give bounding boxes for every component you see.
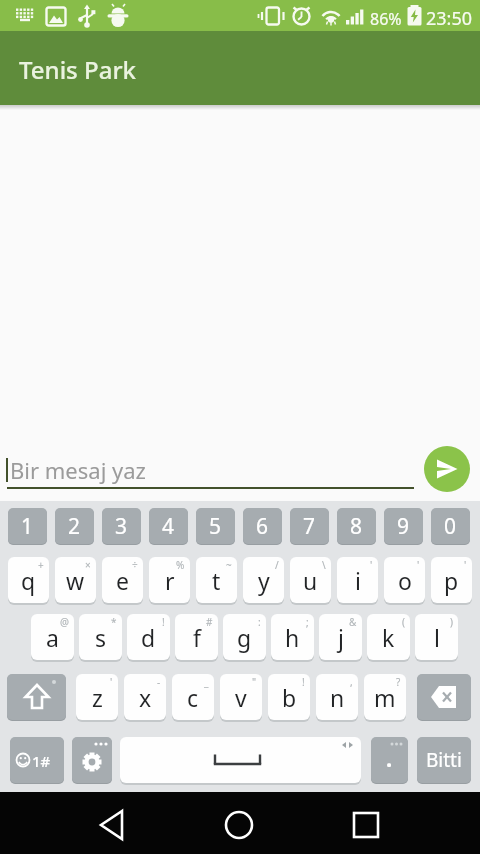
button[interactable]: j bbox=[319, 614, 362, 660]
staticText: 4 bbox=[162, 512, 175, 541]
staticText: \ bbox=[322, 558, 326, 572]
staticText: " bbox=[252, 675, 257, 689]
staticText: 5 bbox=[209, 512, 222, 541]
button[interactable]: t bbox=[196, 557, 237, 603]
staticText: ' bbox=[417, 558, 420, 572]
button[interactable]: 5 bbox=[196, 508, 235, 544]
staticText: ; bbox=[306, 615, 309, 629]
button[interactable]: g bbox=[223, 614, 266, 660]
button[interactable]: 2 bbox=[55, 508, 94, 544]
staticText: 23:50 bbox=[426, 6, 473, 31]
staticText: _ bbox=[204, 675, 209, 689]
staticText: ) bbox=[450, 615, 453, 629]
button[interactable]: b bbox=[268, 674, 310, 720]
staticText: 8 bbox=[350, 512, 363, 541]
button[interactable] bbox=[4, 446, 416, 492]
button[interactable]: 9 bbox=[384, 508, 423, 544]
button[interactable]: m bbox=[364, 674, 406, 720]
button[interactable]: l bbox=[415, 614, 458, 660]
staticText: Bitti bbox=[426, 747, 462, 773]
button[interactable]: a bbox=[31, 614, 74, 660]
staticText: 3 bbox=[115, 512, 128, 541]
staticText: d bbox=[141, 622, 156, 653]
staticText: - bbox=[157, 675, 161, 689]
staticText: ? bbox=[396, 675, 401, 689]
button[interactable]: 1# bbox=[10, 737, 64, 783]
button[interactable]: 0 bbox=[431, 508, 470, 544]
button[interactable] bbox=[85, 802, 141, 848]
staticText: # bbox=[206, 615, 213, 629]
button[interactable]: q bbox=[8, 557, 49, 603]
button[interactable]: . bbox=[371, 737, 408, 783]
button[interactable]: 4 bbox=[149, 508, 188, 544]
staticText: g bbox=[237, 622, 252, 653]
button[interactable]: e bbox=[102, 557, 143, 603]
staticText: k bbox=[382, 622, 395, 653]
staticText: 9 bbox=[397, 512, 410, 541]
staticText: b bbox=[282, 682, 297, 713]
button[interactable]: 8 bbox=[337, 508, 376, 544]
staticText: r bbox=[165, 565, 175, 596]
button[interactable] bbox=[338, 802, 394, 848]
staticText: y bbox=[258, 565, 270, 596]
staticText: v bbox=[235, 682, 247, 713]
button[interactable] bbox=[211, 802, 267, 848]
button[interactable] bbox=[424, 446, 470, 492]
button[interactable]: f bbox=[175, 614, 218, 660]
button[interactable]: s bbox=[79, 614, 122, 660]
staticText: 0 bbox=[444, 512, 457, 541]
button[interactable]: d bbox=[127, 614, 170, 660]
button[interactable]: Bitti bbox=[417, 737, 471, 783]
button[interactable]: c bbox=[172, 674, 214, 720]
staticText: ÷ bbox=[132, 558, 138, 572]
staticText: ~ bbox=[226, 558, 232, 572]
staticText: q bbox=[21, 565, 36, 596]
button[interactable]: 6 bbox=[243, 508, 282, 544]
staticText: 7 bbox=[303, 512, 316, 541]
button[interactable]: h bbox=[271, 614, 314, 660]
button[interactable]: u bbox=[290, 557, 331, 603]
staticText: e bbox=[116, 565, 129, 596]
staticText: x bbox=[139, 682, 152, 713]
button[interactable]: o bbox=[384, 557, 425, 603]
staticText: % bbox=[176, 558, 185, 572]
button[interactable] bbox=[7, 674, 66, 720]
staticText: 1# bbox=[32, 751, 51, 771]
button[interactable] bbox=[120, 737, 361, 783]
button[interactable]: k bbox=[367, 614, 410, 660]
button[interactable]: w bbox=[55, 557, 96, 603]
button[interactable] bbox=[72, 737, 112, 783]
button[interactable]: y bbox=[243, 557, 284, 603]
button[interactable]: n bbox=[316, 674, 358, 720]
button[interactable]: x bbox=[124, 674, 166, 720]
button[interactable]: 3 bbox=[102, 508, 141, 544]
staticText: u bbox=[303, 565, 318, 596]
staticText: z bbox=[92, 682, 103, 713]
staticText: p bbox=[444, 565, 459, 596]
staticText: Bir mesaj yaz bbox=[10, 455, 146, 485]
button[interactable]: v bbox=[220, 674, 262, 720]
button[interactable] bbox=[417, 674, 471, 720]
staticText: + bbox=[38, 558, 44, 572]
button[interactable]: r bbox=[149, 557, 190, 603]
staticText: i bbox=[355, 565, 361, 596]
staticText: 1 bbox=[21, 512, 34, 541]
staticText: × bbox=[85, 558, 91, 572]
staticText: m bbox=[374, 682, 396, 713]
button[interactable]: z bbox=[76, 674, 118, 720]
staticText: n bbox=[330, 682, 345, 713]
staticText: w bbox=[66, 565, 85, 596]
staticText: ! bbox=[302, 675, 305, 689]
staticText: Tenis Park bbox=[19, 53, 136, 86]
button[interactable]: 7 bbox=[290, 508, 329, 544]
button[interactable]: 1 bbox=[8, 508, 47, 544]
staticText: ! bbox=[162, 615, 165, 629]
staticText: * bbox=[111, 615, 117, 629]
staticText: ' bbox=[110, 675, 113, 689]
staticText: , bbox=[350, 675, 353, 689]
staticText: & bbox=[349, 615, 357, 629]
button[interactable]: i bbox=[337, 557, 378, 603]
staticText: j bbox=[338, 622, 344, 653]
staticText: 2 bbox=[68, 512, 81, 541]
button[interactable]: p bbox=[431, 557, 472, 603]
